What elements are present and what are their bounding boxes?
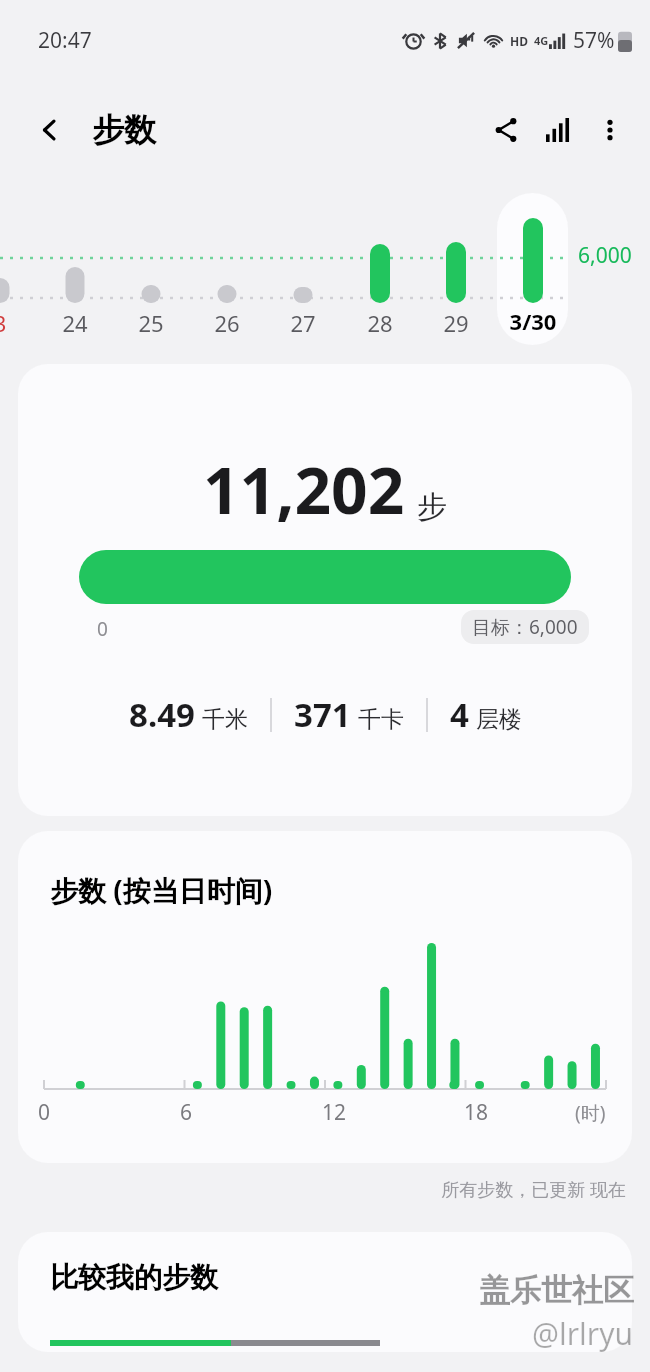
staticText: 18: [464, 1098, 489, 1127]
staticText: 盖乐世社区: [479, 1271, 634, 1310]
button[interactable]: 11,202: [18, 364, 632, 816]
staticText: 371: [294, 692, 351, 737]
button[interactable]: Back: [26, 106, 74, 154]
staticText: 步数 (按当日时间): [50, 871, 273, 909]
staticText: 步数: [92, 110, 156, 150]
button[interactable]: 步数 (按当日时间): [18, 831, 632, 1163]
staticText: 3/30: [503, 306, 563, 336]
staticText: 层楼: [476, 705, 522, 734]
staticText: 29: [426, 308, 486, 338]
staticText: HD: [510, 33, 528, 49]
staticText: 千卡: [358, 705, 404, 734]
staticText: (时): [575, 1100, 606, 1126]
staticText: 6,000: [578, 241, 632, 270]
staticText: 27: [273, 308, 333, 338]
staticText: 24: [45, 308, 105, 338]
button[interactable]: Chart: [532, 104, 584, 156]
staticText: 26: [197, 308, 257, 338]
staticText: 6: [180, 1098, 193, 1127]
staticText: @lrlryu: [532, 1313, 634, 1354]
staticText: 目标：6,000: [472, 614, 578, 640]
button[interactable]: More options: [584, 104, 636, 156]
staticText: 千米: [202, 705, 248, 734]
staticText: 0: [38, 1098, 51, 1127]
button[interactable]: [497, 193, 568, 345]
staticText: 3: [0, 308, 30, 338]
staticText: 所有步数，已更新 现在: [0, 1177, 626, 1202]
staticText: 4: [450, 692, 469, 737]
staticText: 比较我的步数: [50, 1260, 218, 1295]
button[interactable]: 比较我的步数: [18, 1232, 632, 1352]
staticText: 12: [322, 1098, 347, 1127]
staticText: 0: [97, 616, 108, 642]
staticText: 11,202: [203, 446, 405, 533]
staticText: 25: [121, 308, 181, 338]
staticText: 步: [417, 488, 447, 526]
staticText: 4G: [534, 33, 549, 48]
staticText: 20:47: [38, 26, 92, 55]
staticText: 8.49: [129, 692, 195, 737]
staticText: 28: [350, 308, 410, 338]
staticText: 57%: [573, 26, 615, 55]
button[interactable]: Share: [480, 104, 532, 156]
